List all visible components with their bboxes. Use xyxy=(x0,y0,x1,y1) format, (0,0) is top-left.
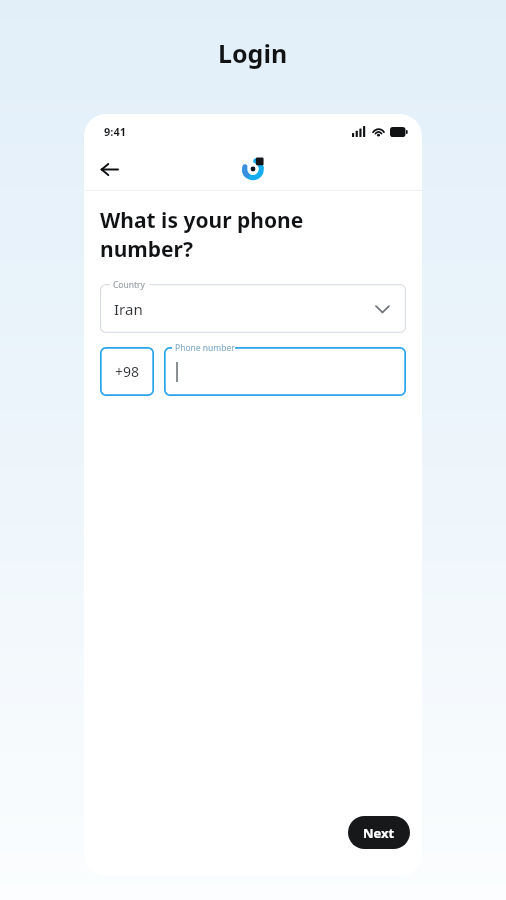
staticText: Phone number xyxy=(175,342,235,354)
staticText: 9:41 xyxy=(104,124,126,139)
button[interactable]: Country xyxy=(100,284,406,333)
button[interactable]: Next xyxy=(348,816,410,849)
button[interactable]: Phone number xyxy=(164,347,406,396)
staticText: Iran xyxy=(114,299,143,319)
staticText: +98 xyxy=(115,362,140,381)
button[interactable]: Back xyxy=(92,152,126,186)
button[interactable]: Select country xyxy=(370,297,394,321)
staticText: Country xyxy=(113,279,145,291)
staticText: Login xyxy=(218,36,288,70)
button[interactable]: +98 xyxy=(100,347,154,396)
staticText: Next xyxy=(363,824,395,842)
staticText: What is your phone xyxy=(100,206,304,235)
staticText: number? xyxy=(100,235,193,264)
